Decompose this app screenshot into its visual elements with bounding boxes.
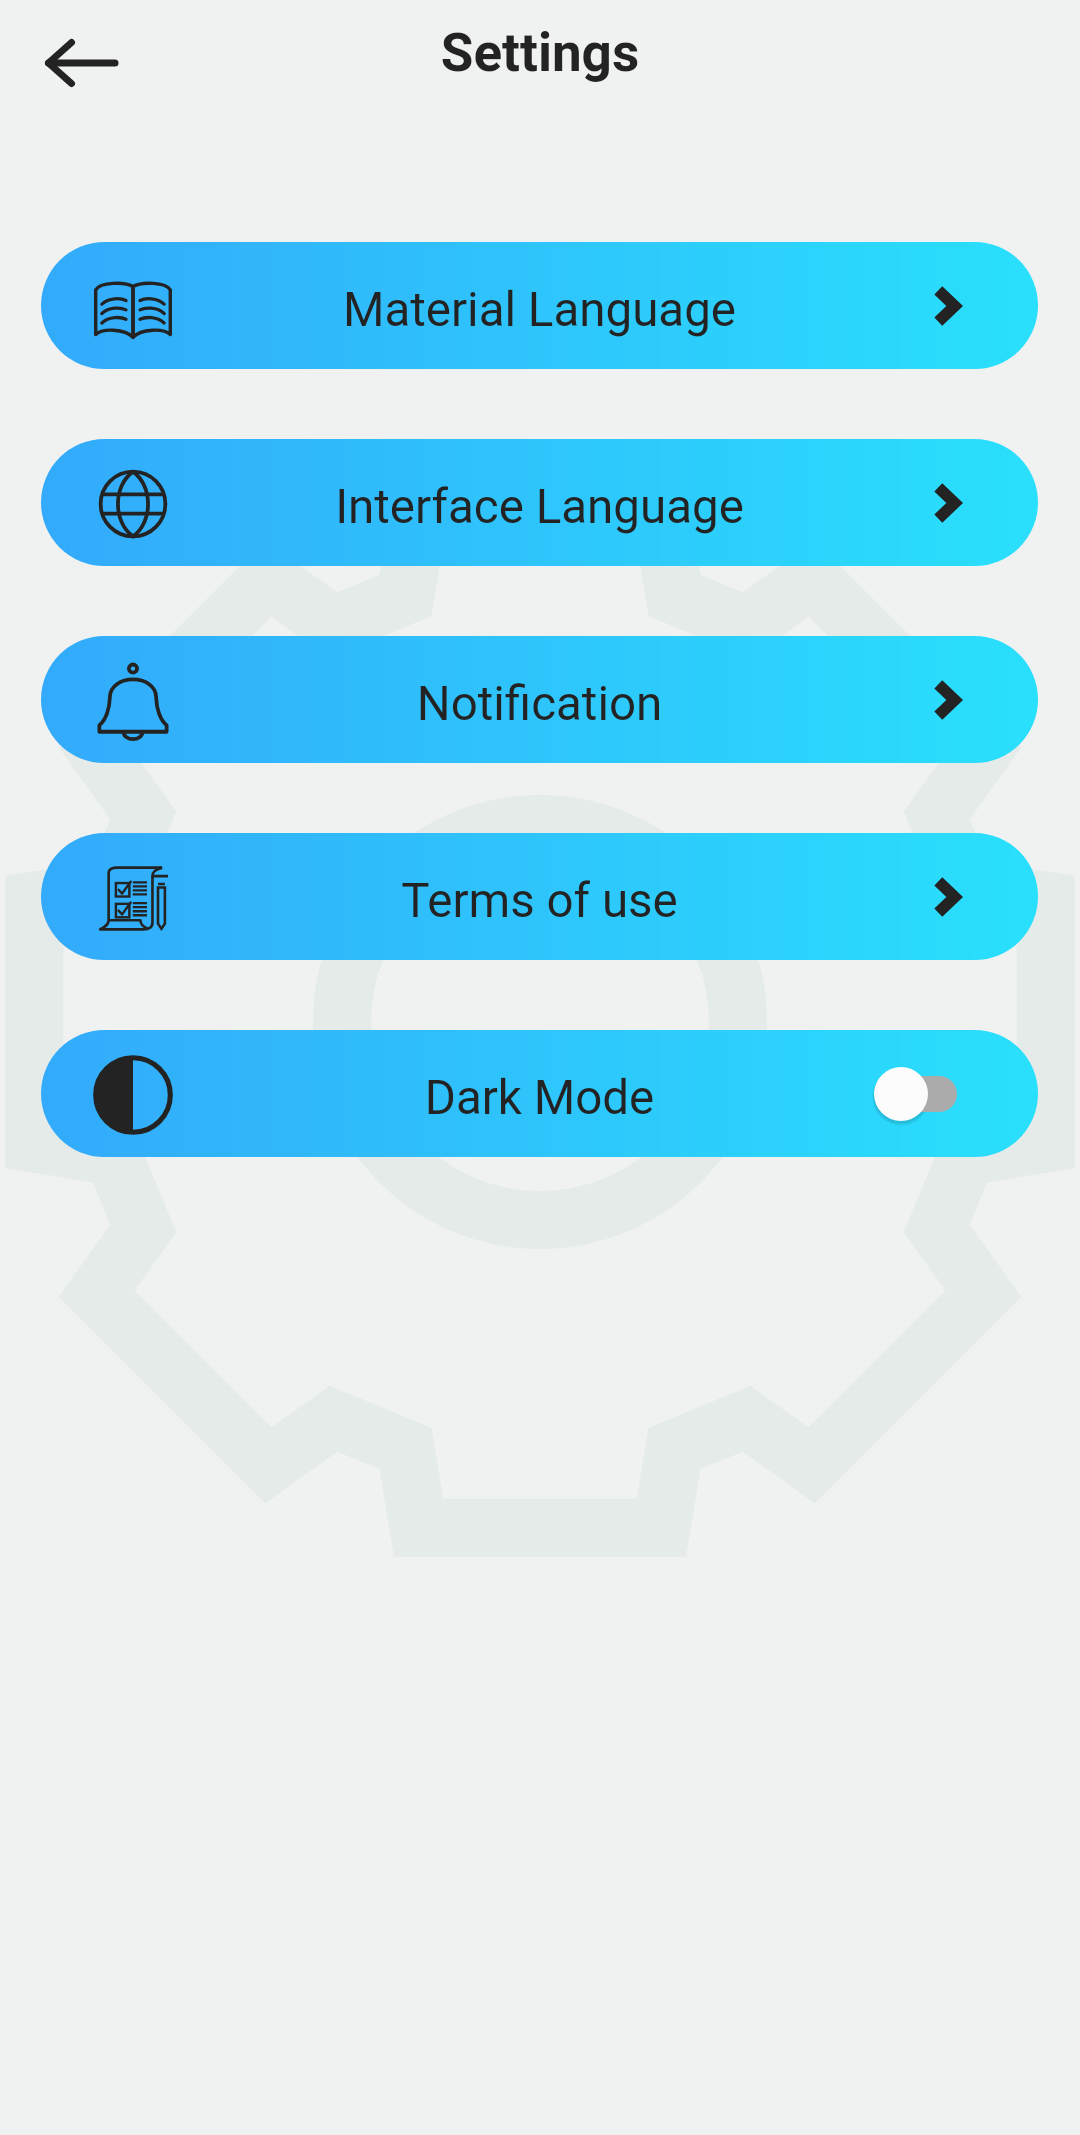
- staticText: Notification: [41, 676, 1038, 732]
- staticText: Interface Language: [41, 479, 1038, 535]
- button[interactable]: Interface Language: [41, 439, 1038, 566]
- button[interactable]: Back: [22, 20, 134, 106]
- staticText: Material Language: [41, 282, 1038, 338]
- button[interactable]: Material Language: [41, 242, 1038, 369]
- staticText: Dark Mode: [41, 1070, 1038, 1126]
- staticText: Terms of use: [41, 873, 1038, 929]
- button[interactable]: Dark Mode toggle: [873, 1062, 965, 1126]
- button[interactable]: Terms of use: [41, 833, 1038, 960]
- button[interactable]: Notification: [41, 636, 1038, 763]
- button[interactable]: Dark Mode: [41, 1030, 1038, 1157]
- staticText: Settings: [0, 22, 1080, 84]
